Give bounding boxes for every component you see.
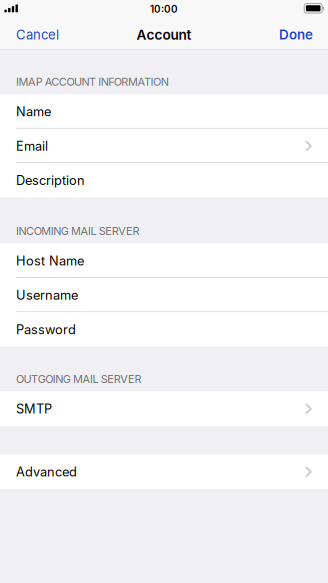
- staticText: OUTGOING MAIL SERVER: [16, 372, 141, 386]
- staticText: Password: [16, 322, 76, 337]
- button[interactable]: SMTP: [0, 392, 328, 426]
- staticText: Host Name: [16, 253, 84, 268]
- button[interactable]: Username: [0, 278, 328, 312]
- button[interactable]: Description: [0, 163, 328, 197]
- staticText: Done: [279, 27, 313, 43]
- staticText: 10:00: [150, 3, 178, 15]
- staticText: Email: [16, 138, 48, 154]
- staticText: Description: [16, 173, 85, 188]
- button[interactable]: Advanced: [0, 455, 328, 489]
- button[interactable]: Done: [263, 20, 328, 49]
- staticText: Name: [16, 104, 51, 119]
- staticText: Advanced: [16, 464, 77, 480]
- button[interactable]: Host Name: [0, 244, 328, 278]
- staticText: Cancel: [16, 27, 59, 43]
- staticText: SMTP: [16, 401, 52, 417]
- staticText: Username: [16, 287, 78, 303]
- button[interactable]: Email: [0, 129, 328, 163]
- staticText: INCOMING MAIL SERVER: [16, 224, 139, 238]
- staticText: IMAP ACCOUNT INFORMATION: [16, 75, 169, 88]
- staticText: Account: [136, 26, 191, 43]
- button[interactable]: Name: [0, 94, 328, 129]
- button[interactable]: Password: [0, 312, 328, 347]
- button[interactable]: Cancel: [0, 20, 75, 49]
